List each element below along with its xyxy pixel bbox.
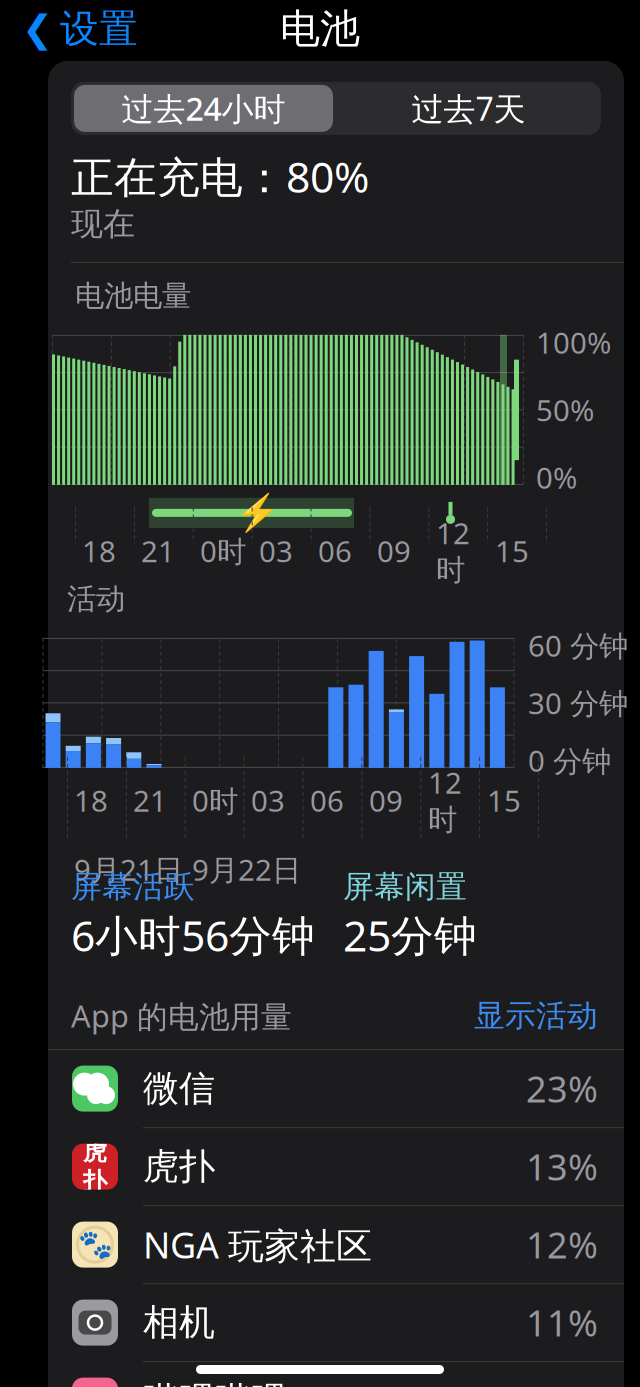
staticText: 30 分钟 xyxy=(528,683,628,722)
staticText: 虎扑 xyxy=(83,1137,107,1196)
staticText: 15 xyxy=(487,781,521,820)
staticText: 03 xyxy=(251,781,285,820)
staticText: 15 xyxy=(495,531,529,570)
staticText: 0时 xyxy=(200,531,246,570)
staticText: 12时 xyxy=(436,513,470,588)
staticText: 100% xyxy=(536,323,611,362)
staticText: 电池电量 xyxy=(75,278,191,314)
button[interactable]: 过去24小时 xyxy=(71,82,336,135)
staticText: 09 xyxy=(369,781,403,820)
staticText: 设置 xyxy=(60,5,138,53)
staticText: 活动 xyxy=(67,581,125,617)
staticText: 相机 xyxy=(143,1300,215,1345)
staticText: 9月22日 xyxy=(192,850,301,889)
staticText: 12% xyxy=(526,1221,598,1268)
staticText: 现在 xyxy=(71,204,135,244)
staticText: 23% xyxy=(526,1065,598,1112)
staticText: 6小时56分钟 xyxy=(71,907,315,963)
button[interactable]: 微信 xyxy=(48,1050,624,1128)
staticText: ⚡ xyxy=(235,492,280,533)
staticText: 过去24小时 xyxy=(121,87,285,130)
staticText: 0时 xyxy=(192,781,238,820)
staticText: 屏幕闲置 xyxy=(343,868,467,906)
button[interactable]: 🐾 xyxy=(48,1206,624,1284)
staticText: ❮ xyxy=(22,8,53,50)
staticText: 正在充电：80% xyxy=(71,148,369,205)
staticText: 03 xyxy=(259,531,293,570)
staticText: 50% xyxy=(536,390,594,429)
staticText: 06 xyxy=(310,781,344,820)
staticText: 25分钟 xyxy=(343,907,477,963)
staticText: 21 xyxy=(133,781,167,820)
staticText: 18 xyxy=(82,531,116,570)
staticText: 🐾 xyxy=(77,1229,112,1261)
button[interactable]: 过去7天 xyxy=(336,82,601,135)
staticText: NGA 玩家社区 xyxy=(143,1221,372,1269)
staticText: 哔哩哔哩 xyxy=(143,1378,287,1387)
staticText: 11% xyxy=(526,1299,598,1346)
staticText: 9月21日 xyxy=(74,850,183,889)
staticText: 60 分钟 xyxy=(528,626,628,665)
staticText: 虎扑 xyxy=(143,1144,215,1189)
staticText: 0 分钟 xyxy=(528,741,611,780)
button[interactable]: 显示活动 xyxy=(474,997,598,1034)
staticText: 0% xyxy=(536,458,577,497)
staticText: 21 xyxy=(141,531,175,570)
button[interactable]: 相机 xyxy=(48,1284,624,1362)
staticText: 18 xyxy=(74,781,108,820)
staticText: 12时 xyxy=(428,763,462,838)
staticText: 屏幕活跃 xyxy=(71,868,195,906)
staticText: 显示活动 xyxy=(474,997,598,1034)
staticText: 09 xyxy=(377,531,411,570)
button[interactable]: 虎扑 xyxy=(48,1128,624,1206)
button[interactable]: bilibili xyxy=(48,1362,624,1387)
button[interactable]: ❮ xyxy=(16,0,144,61)
staticText: 06 xyxy=(318,531,352,570)
staticText: 13% xyxy=(526,1143,598,1190)
staticText: 过去7天 xyxy=(411,87,525,130)
staticText: 电池 xyxy=(280,4,360,53)
staticText: App 的电池用量 xyxy=(71,995,292,1036)
staticText: 微信 xyxy=(143,1066,215,1111)
